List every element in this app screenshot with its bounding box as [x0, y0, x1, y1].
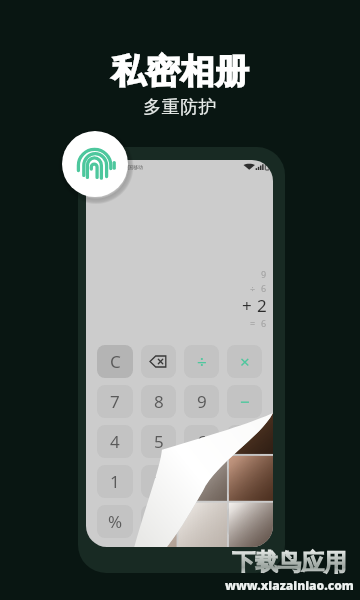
- staticText: ÷: [197, 350, 207, 373]
- button[interactable]: 9: [184, 385, 219, 418]
- staticText: +: [240, 430, 250, 453]
- staticText: =: [250, 317, 256, 329]
- staticText: =: [240, 510, 250, 533]
- staticText: =: [240, 470, 250, 493]
- button[interactable]: +: [227, 425, 262, 458]
- staticText: 9: [261, 268, 267, 280]
- button[interactable]: 5: [141, 425, 176, 458]
- button[interactable]: −: [227, 385, 262, 418]
- staticText: 私密相册: [111, 50, 249, 93]
- staticText: 3: [197, 470, 207, 493]
- button[interactable]: 3: [184, 465, 219, 498]
- staticText: 2: [154, 470, 164, 493]
- staticText: www.xiazainiao.com: [225, 577, 354, 593]
- staticText: 4: [110, 430, 120, 453]
- button[interactable]: 1: [97, 465, 133, 498]
- staticText: 6: [197, 430, 207, 453]
- button[interactable]: Fingerprint unlock: [62, 131, 128, 197]
- staticText: .: [199, 510, 204, 533]
- staticText: 6: [261, 282, 267, 294]
- staticText: 9: [197, 390, 207, 413]
- staticText: +: [242, 294, 252, 317]
- button[interactable]: =: [227, 465, 262, 498]
- staticText: %: [108, 510, 123, 533]
- staticText: 多重防护: [143, 96, 217, 119]
- button[interactable]: =: [227, 505, 262, 538]
- button[interactable]: .: [184, 505, 219, 538]
- button[interactable]: ÷: [184, 345, 219, 378]
- button[interactable]: C: [97, 345, 133, 378]
- staticText: 1: [110, 470, 120, 493]
- staticText: 8: [154, 390, 164, 413]
- staticText: −: [240, 390, 250, 413]
- other: Delete: [150, 356, 167, 367]
- button[interactable]: 7: [97, 385, 133, 418]
- button[interactable]: %: [97, 505, 133, 538]
- button[interactable]: ×: [227, 345, 262, 378]
- staticText: 5: [154, 430, 164, 453]
- button[interactable]: Delete: [141, 345, 176, 378]
- staticText: ÷: [250, 282, 256, 294]
- button[interactable]: 4: [97, 425, 133, 458]
- button[interactable]: 0: [141, 505, 176, 538]
- button[interactable]: 8: [141, 385, 176, 418]
- button[interactable]: 2: [141, 465, 176, 498]
- staticText: 2: [257, 294, 267, 317]
- staticText: 中国移动: [123, 164, 143, 170]
- staticText: 7: [110, 390, 120, 413]
- staticText: 下载鸟应用: [232, 548, 347, 577]
- staticText: ×: [240, 350, 250, 373]
- staticText: C: [110, 350, 121, 373]
- button[interactable]: 6: [184, 425, 219, 458]
- staticText: 6: [261, 317, 267, 329]
